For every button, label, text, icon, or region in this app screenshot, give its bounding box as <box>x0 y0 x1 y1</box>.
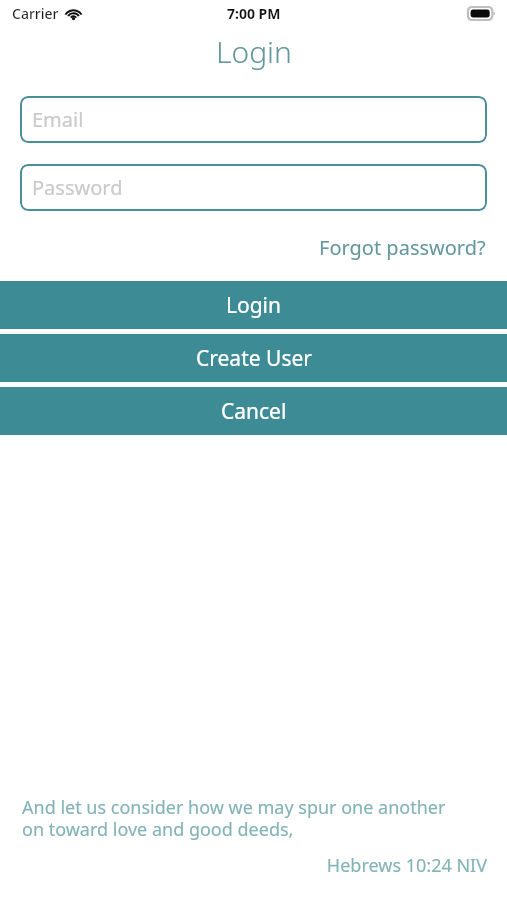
button[interactable]: Login <box>0 281 507 329</box>
button[interactable]: Forgot password? <box>317 231 488 264</box>
staticText: Login <box>216 31 292 72</box>
staticText: Cancel <box>221 397 287 426</box>
staticText: 7:00 PM <box>227 4 281 23</box>
button[interactable]: Password <box>20 164 487 211</box>
staticText: Email <box>32 106 84 133</box>
button[interactable]: Email <box>20 96 487 143</box>
staticText: And let us consider how we may spur one … <box>22 795 487 842</box>
button[interactable]: Create User <box>0 334 507 382</box>
staticText: Create User <box>196 344 312 373</box>
staticText: Password <box>32 174 123 201</box>
button[interactable]: Cancel <box>0 387 507 435</box>
staticText: Hebrews 10:24 NIV <box>22 853 487 878</box>
staticText: Forgot password? <box>319 234 486 261</box>
staticText: Login <box>226 291 282 320</box>
staticText: Carrier <box>12 4 59 23</box>
